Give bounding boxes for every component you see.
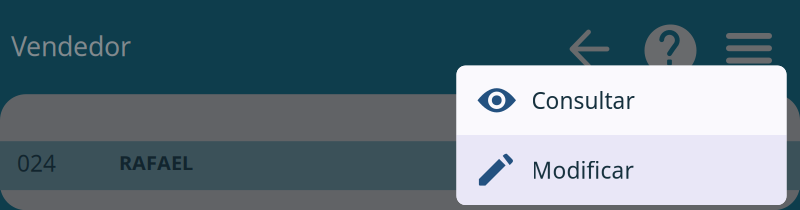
button[interactable]: Consultar [456, 66, 786, 135]
staticText: Vendedor [11, 28, 131, 64]
staticText: Consultar [531, 85, 634, 115]
button[interactable]: Help [644, 24, 696, 76]
staticText: 024 [17, 148, 56, 178]
button[interactable]: Modificar [456, 135, 786, 205]
staticText: Modificar [531, 155, 633, 185]
button[interactable]: Back [569, 28, 610, 70]
staticText: RAFAEL [119, 149, 193, 176]
button[interactable]: Menu [726, 33, 772, 63]
